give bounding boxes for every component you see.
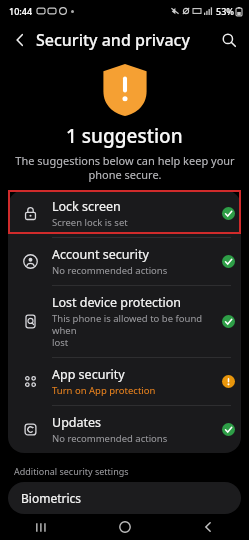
staticText: 10:44 — [9, 5, 33, 17]
staticText: 1 suggestion — [66, 123, 183, 149]
staticText: Lock screen — [52, 198, 121, 215]
button[interactable]: Back — [6, 26, 34, 54]
button[interactable]: Biometrics — [8, 482, 241, 514]
staticText: Screen lock is set — [52, 216, 128, 229]
button[interactable]: Home — [83, 514, 166, 540]
staticText: No recommended actions — [52, 264, 168, 277]
staticText: This phone is allowed to be found when l… — [52, 312, 215, 349]
staticText: Updates — [52, 414, 102, 431]
button[interactable]: Back — [166, 514, 249, 540]
button[interactable]: Account security — [8, 238, 241, 285]
staticText: No recommended actions — [52, 432, 168, 445]
staticText: Security and privacy — [36, 29, 190, 51]
staticText: Account security — [52, 246, 149, 263]
button[interactable]: Search — [215, 26, 243, 54]
staticText: 53% — [216, 5, 234, 17]
button[interactable]: Lost device protection — [8, 286, 241, 357]
staticText: Biometrics — [21, 490, 82, 506]
button[interactable]: Updates — [8, 406, 241, 453]
staticText: Additional security settings — [14, 465, 129, 477]
button[interactable]: Recents — [0, 514, 83, 540]
staticText: Lost device protection — [52, 294, 181, 311]
button[interactable]: Lock screen — [8, 190, 241, 237]
staticText: Turn on App protection — [52, 384, 156, 397]
staticText: App security — [52, 366, 125, 383]
staticText: The suggestions below can help keep your… — [15, 153, 235, 182]
button[interactable]: App security — [8, 358, 241, 405]
